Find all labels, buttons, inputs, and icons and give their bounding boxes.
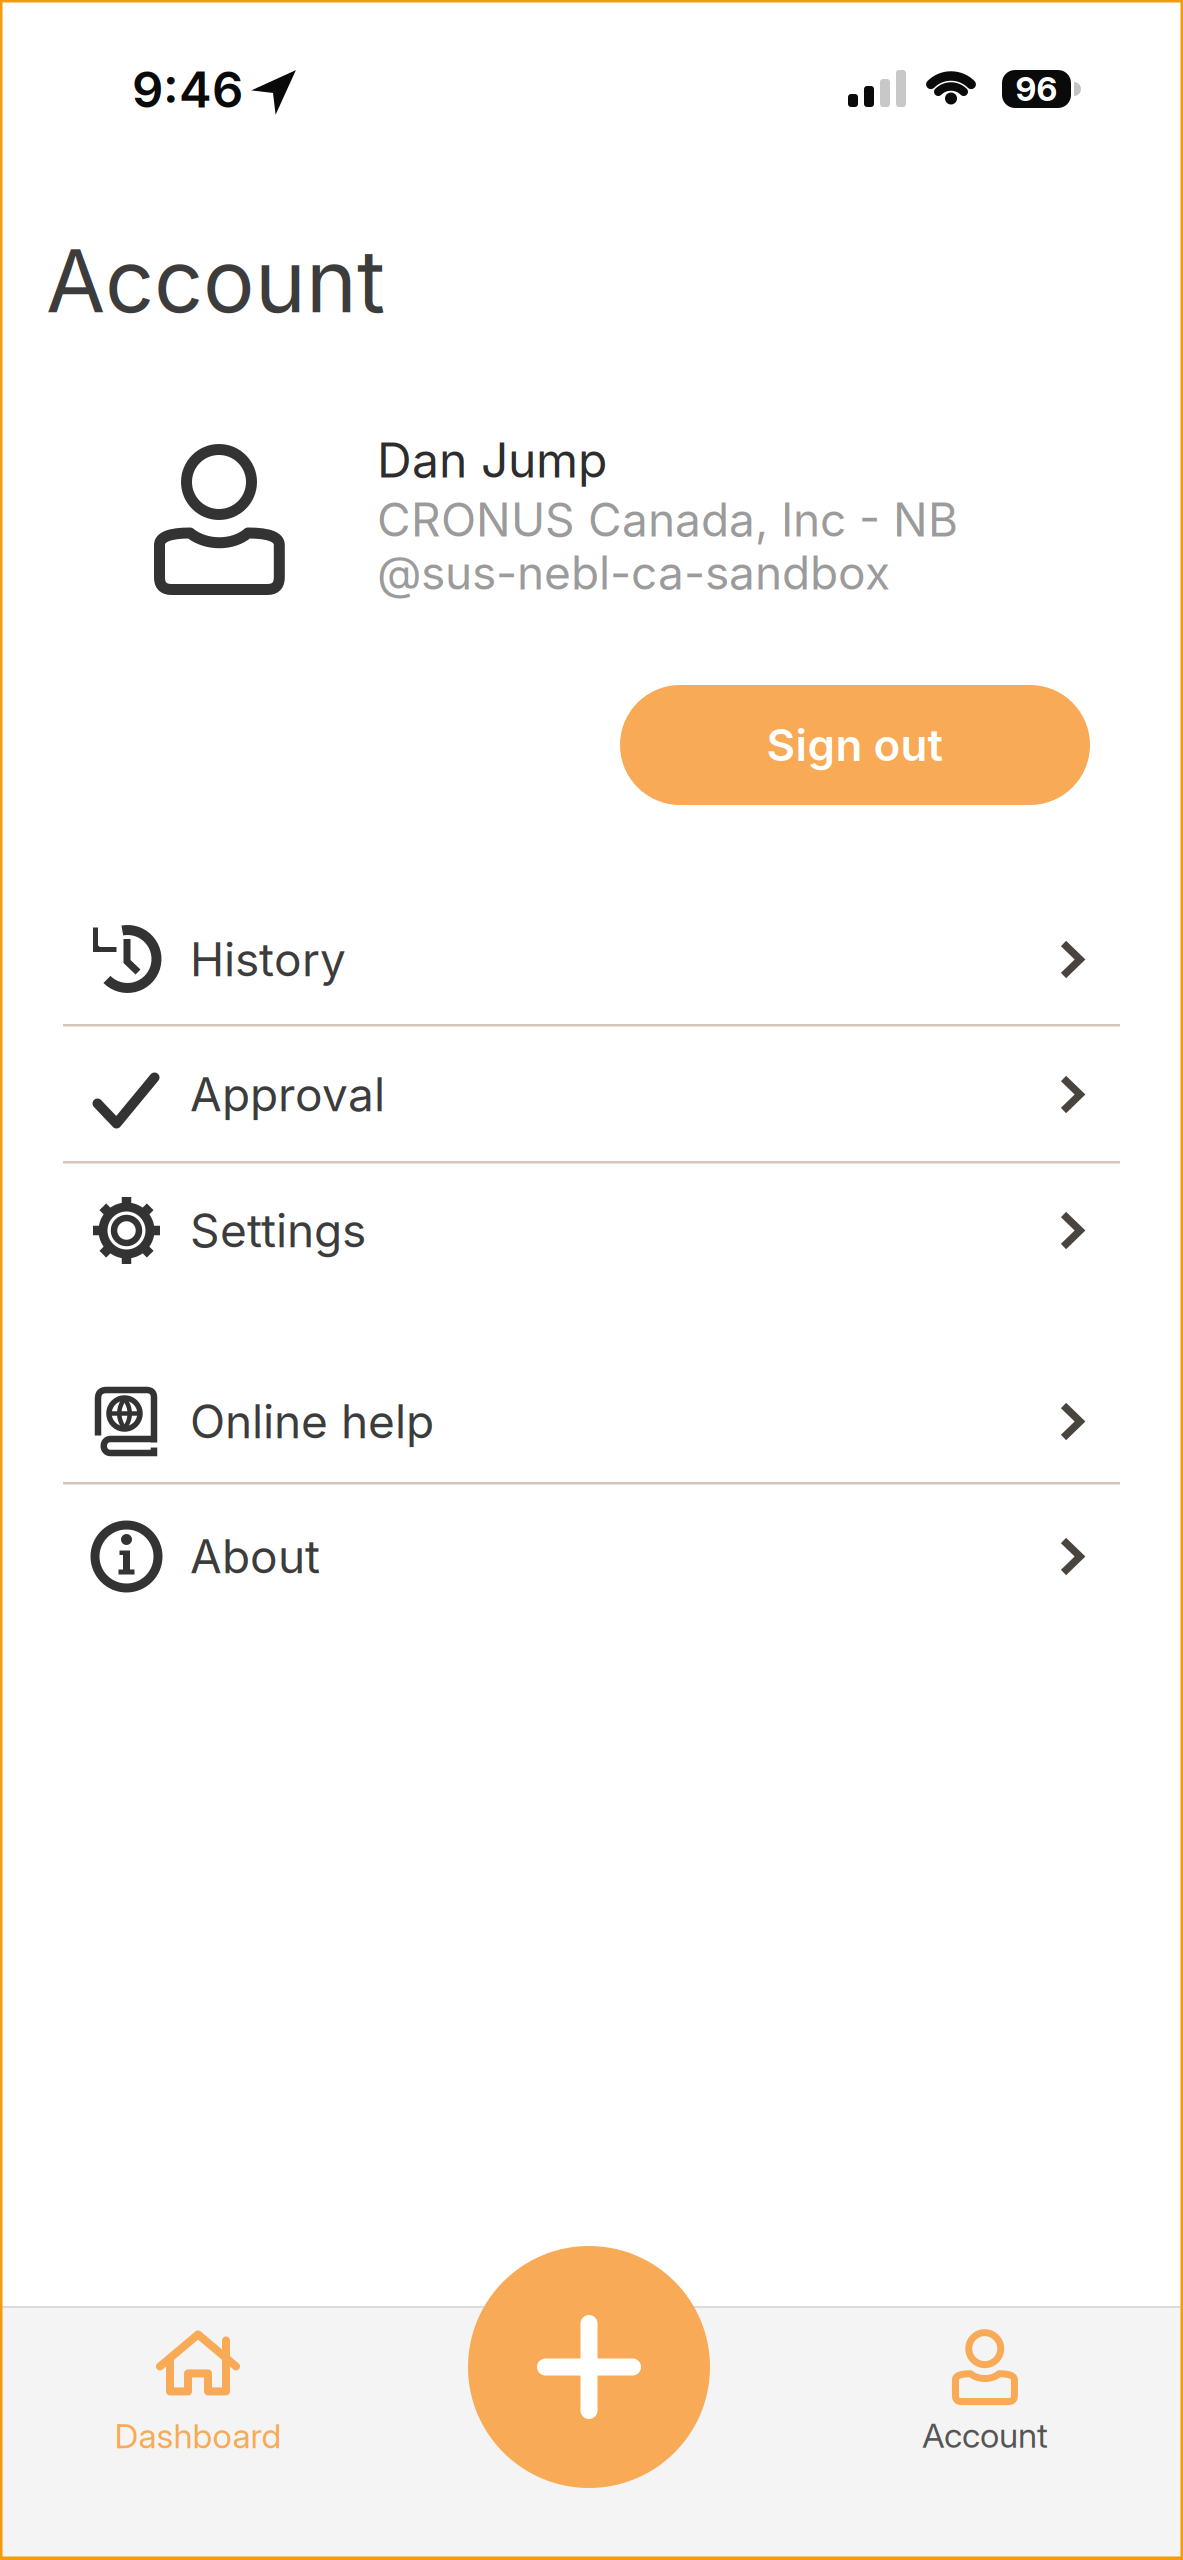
button[interactable]: Settings (63, 1163, 1120, 1298)
button[interactable]: About (63, 1489, 1120, 1624)
button[interactable]: Add (468, 2246, 710, 2488)
staticText: Dashboard (114, 2415, 281, 2456)
staticText: CRONUS Canada, Inc - NB (377, 492, 958, 548)
staticText: Approval (190, 1067, 385, 1122)
button[interactable]: History (63, 892, 1120, 1027)
staticText: Online help (190, 1394, 434, 1449)
staticText: History (190, 932, 346, 987)
staticText: 9:46 (132, 60, 243, 119)
staticText: Account (922, 2415, 1048, 2456)
staticText: 96 (1015, 69, 1057, 109)
staticText: @sus-nebl-ca-sandbox (377, 545, 890, 601)
button[interactable]: Sign out (620, 685, 1090, 805)
button[interactable]: Account (845, 2313, 1125, 2463)
staticText: Sign out (766, 718, 943, 772)
staticText: Dan Jump (377, 431, 607, 489)
button[interactable]: Online help (63, 1354, 1120, 1489)
staticText: Settings (190, 1203, 366, 1258)
staticText: Account (46, 229, 385, 333)
button[interactable]: Approval (63, 1027, 1120, 1162)
button[interactable]: Dashboard (58, 2319, 338, 2469)
staticText: About (190, 1529, 320, 1584)
